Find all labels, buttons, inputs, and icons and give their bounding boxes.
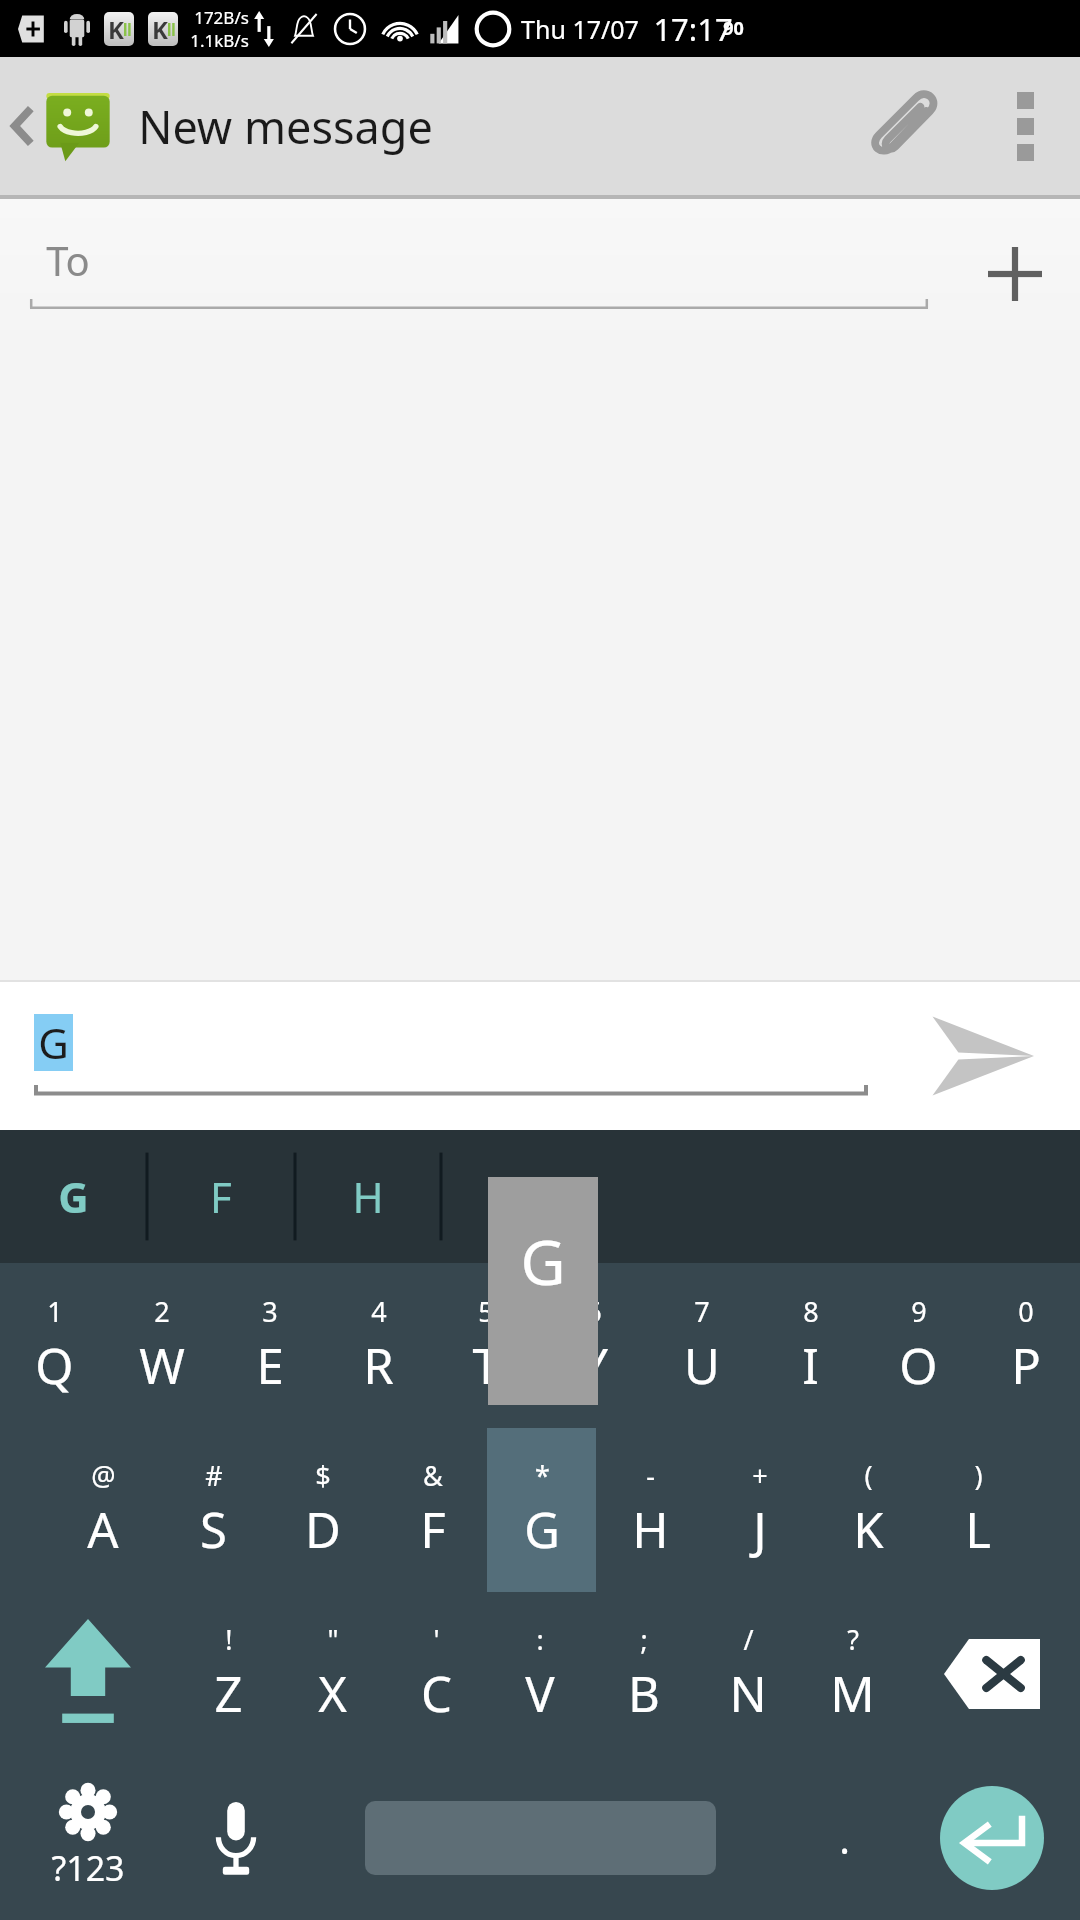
staticText: 1.1kB/s xyxy=(190,29,249,52)
staticText: Y xyxy=(580,1332,608,1399)
staticText: Thu 17/07 xyxy=(521,12,639,46)
button[interactable]: 7 xyxy=(648,1263,756,1428)
button[interactable]: + xyxy=(705,1428,814,1592)
button[interactable]: 5 xyxy=(432,1263,540,1428)
staticText: F xyxy=(210,1168,232,1225)
staticText: 3 xyxy=(262,1293,278,1330)
staticText: : xyxy=(536,1621,544,1658)
staticText: M xyxy=(830,1660,875,1727)
staticText: G xyxy=(524,1496,560,1563)
button[interactable]: 1 xyxy=(0,1263,108,1428)
staticText: A xyxy=(87,1496,119,1563)
button[interactable]: G xyxy=(34,1014,880,1099)
button[interactable]: Attach xyxy=(838,60,970,192)
staticText: S xyxy=(200,1496,227,1563)
button[interactable]: $ xyxy=(268,1428,378,1592)
button[interactable]: ( xyxy=(814,1428,923,1592)
staticText: W xyxy=(139,1332,185,1399)
staticText: $ xyxy=(315,1457,331,1494)
staticText: 17:17 xyxy=(653,8,733,50)
staticText: ; xyxy=(640,1621,648,1658)
staticText: @ xyxy=(91,1457,116,1494)
staticText: Z xyxy=(214,1660,243,1727)
staticText: H xyxy=(352,1168,384,1225)
staticText: G xyxy=(58,1168,89,1225)
button[interactable]: Navigate up xyxy=(0,90,120,162)
staticText: 172B/s xyxy=(194,6,249,29)
button[interactable]: F xyxy=(147,1130,294,1263)
staticText: G xyxy=(38,1014,69,1071)
button[interactable]: To xyxy=(30,233,928,315)
staticText: O xyxy=(899,1332,938,1399)
button[interactable]: - xyxy=(596,1428,705,1592)
staticText: ! xyxy=(225,1621,233,1658)
button[interactable]: ? xyxy=(800,1592,904,1756)
staticText: L xyxy=(965,1496,991,1563)
button[interactable]: More options xyxy=(970,71,1080,181)
button[interactable]: G xyxy=(0,1130,147,1263)
staticText: To xyxy=(46,233,90,287)
button[interactable]: . xyxy=(784,1756,904,1920)
staticText: 6 xyxy=(586,1293,602,1330)
button[interactable]: Send xyxy=(880,982,1080,1130)
button[interactable]: 3 xyxy=(216,1263,324,1428)
staticText: D xyxy=(305,1496,341,1563)
button[interactable]: Backspace xyxy=(904,1592,1080,1756)
staticText: 1 xyxy=(47,1293,63,1330)
staticText: R xyxy=(363,1332,394,1399)
button[interactable]: H xyxy=(294,1130,441,1263)
staticText: ' xyxy=(433,1621,440,1658)
button[interactable]: Voice input xyxy=(176,1756,296,1920)
staticText: + xyxy=(752,1457,768,1494)
staticText: ) xyxy=(974,1457,983,1494)
button[interactable]: / xyxy=(696,1592,800,1756)
staticText: 7 xyxy=(694,1293,710,1330)
button[interactable]: 9 xyxy=(864,1263,972,1428)
staticText: G xyxy=(520,1219,566,1303)
staticText: 2 xyxy=(154,1293,170,1330)
staticText: # xyxy=(205,1457,223,1494)
staticText: 90 xyxy=(723,16,744,41)
button[interactable]: " xyxy=(280,1592,384,1756)
staticText: C xyxy=(421,1660,452,1727)
button[interactable]: 2 xyxy=(108,1263,216,1428)
button[interactable]: ' xyxy=(384,1592,488,1756)
button[interactable]: Shift xyxy=(0,1592,176,1756)
staticText: 0 xyxy=(1018,1293,1034,1330)
staticText: I xyxy=(802,1332,819,1399)
button[interactable]: # xyxy=(158,1428,268,1592)
button[interactable]: * xyxy=(487,1428,596,1592)
button[interactable]: & xyxy=(378,1428,487,1592)
staticText: N xyxy=(729,1660,767,1727)
button[interactable]: @ xyxy=(48,1428,158,1592)
staticText: ? xyxy=(847,1621,859,1658)
staticText: P xyxy=(1011,1332,1041,1399)
staticText: & xyxy=(423,1457,443,1494)
staticText: K xyxy=(853,1496,884,1563)
staticText: / xyxy=(743,1621,754,1658)
staticText: * xyxy=(535,1457,550,1494)
button[interactable]: 0 xyxy=(972,1263,1080,1428)
button[interactable]: Add recipient xyxy=(950,209,1080,339)
staticText: . xyxy=(839,1811,850,1865)
staticText: ?123 xyxy=(51,1845,125,1891)
button[interactable]: Enter xyxy=(904,1756,1080,1920)
button[interactable]: ! xyxy=(176,1592,280,1756)
staticText: K xyxy=(152,13,168,46)
staticText: 9 xyxy=(911,1293,927,1330)
button[interactable]: Symbols and settings xyxy=(0,1756,176,1920)
staticText: " xyxy=(327,1621,339,1658)
button[interactable]: 6 xyxy=(540,1263,648,1428)
staticText: Q xyxy=(35,1332,74,1399)
button[interactable]: ; xyxy=(592,1592,696,1756)
button[interactable]: ) xyxy=(923,1428,1032,1592)
staticText: H xyxy=(632,1496,669,1563)
staticText: B xyxy=(628,1660,660,1727)
button[interactable]: 8 xyxy=(756,1263,864,1428)
staticText: 8 xyxy=(803,1293,819,1330)
button[interactable]: 4 xyxy=(324,1263,432,1428)
button[interactable]: : xyxy=(488,1592,592,1756)
staticText: New message xyxy=(138,96,433,157)
staticText: X xyxy=(318,1660,347,1727)
button[interactable]: Space xyxy=(296,1756,784,1920)
